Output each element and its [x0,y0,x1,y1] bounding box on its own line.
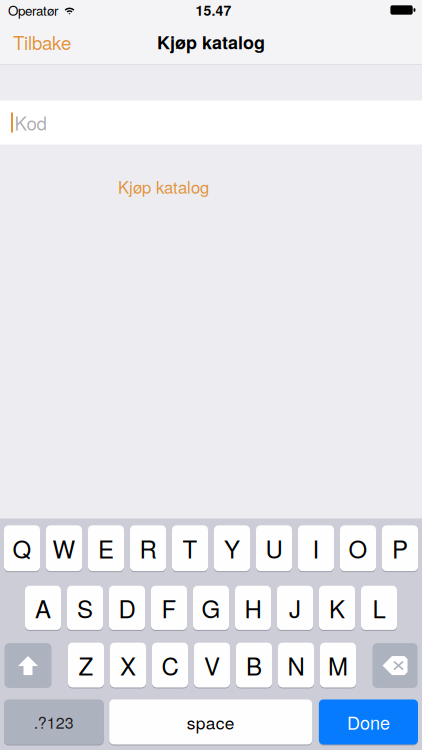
staticText: B [246,648,262,682]
button[interactable]: S [67,586,103,631]
staticText: Done [347,709,390,735]
button[interactable]: X [110,643,146,688]
staticText: V [204,648,220,682]
staticText: Y [224,531,240,565]
button[interactable]: R [130,525,166,572]
staticText: Operatør [8,0,58,20]
button[interactable]: F [151,586,187,631]
staticText: R [139,531,156,565]
staticText: M [328,648,348,682]
staticText: Z [78,648,93,682]
staticText: K [329,591,345,625]
staticText: 15.47 [195,0,231,20]
button[interactable]: Delete [372,643,417,688]
button[interactable]: I [298,525,334,572]
button[interactable]: A [25,586,61,631]
button[interactable]: Done [319,699,418,745]
staticText: W [52,531,75,565]
button[interactable]: G [193,586,229,631]
button[interactable]: Tilbake [0,20,84,64]
staticText: Q [12,531,31,565]
staticText: space [187,709,235,734]
button[interactable]: T [172,525,208,572]
staticText: E [98,531,114,565]
staticText: D [118,591,135,625]
button[interactable]: .?123 [4,699,104,745]
button[interactable]: B [236,643,272,688]
staticText: P [392,531,408,565]
staticText: I [312,531,319,565]
staticText: H [244,591,261,625]
button[interactable]: O [340,525,376,572]
button[interactable]: L [361,586,397,631]
staticText: Kod [14,109,46,136]
staticText: .?123 [34,710,74,733]
button[interactable]: N [278,643,314,688]
staticText: G [201,591,220,625]
button[interactable]: U [256,525,292,572]
button[interactable]: K [319,586,355,631]
button[interactable]: Z [68,643,104,688]
staticText: L [372,591,385,625]
button[interactable]: J [277,586,313,631]
button[interactable]: Shift [4,643,51,688]
button[interactable]: W [46,525,82,572]
staticText: F [161,591,176,625]
staticText: J [289,591,301,625]
button[interactable]: C [152,643,188,688]
staticText: U [265,531,282,565]
staticText: O [348,531,367,565]
button[interactable]: M [320,643,356,688]
button[interactable]: P [382,525,418,572]
staticText: N [287,648,304,682]
button[interactable]: space [109,699,312,745]
button[interactable]: Q [4,525,40,572]
button[interactable]: E [88,525,124,572]
button[interactable]: Y [214,525,250,572]
staticText: Tilbake [13,29,71,55]
staticText: Kjøp katalog [118,175,209,198]
staticText: S [77,591,93,625]
staticText: A [35,591,51,625]
button[interactable]: D [109,586,145,631]
staticText: C [161,648,178,682]
button[interactable]: H [235,586,271,631]
staticText: X [120,648,136,682]
button[interactable]: V [194,643,230,688]
staticText: T [182,531,197,565]
staticText: Kjøp katalog [157,29,265,55]
